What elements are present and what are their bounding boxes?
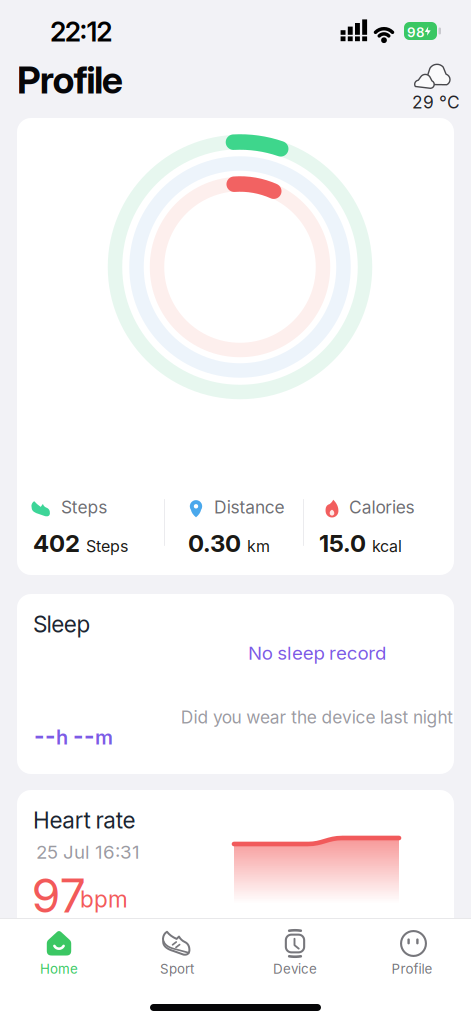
button[interactable]: Profile bbox=[353, 920, 471, 984]
button[interactable]: Heart rate bbox=[17, 790, 454, 980]
staticText: Sleep bbox=[33, 611, 90, 638]
button[interactable]: Home bbox=[0, 920, 118, 984]
button[interactable]: Activity bbox=[17, 118, 454, 575]
staticText: Calories bbox=[349, 497, 415, 517]
staticText: Profile bbox=[17, 58, 123, 102]
staticText: Device bbox=[273, 961, 317, 977]
button[interactable]: Device bbox=[235, 920, 353, 984]
button[interactable]: Sleep bbox=[17, 594, 454, 774]
staticText: Home bbox=[40, 961, 78, 977]
staticText: 22:12 bbox=[50, 16, 112, 47]
staticText: No sleep record bbox=[248, 642, 386, 664]
staticText: 29 °C bbox=[412, 92, 460, 112]
staticText: 97 bbox=[31, 868, 85, 923]
staticText: Steps bbox=[61, 497, 107, 517]
staticText: 15.0 kcal bbox=[319, 529, 402, 557]
staticText: Profile bbox=[391, 961, 432, 977]
staticText: Did you wear the device last night bbox=[181, 707, 453, 727]
staticText: --h --m bbox=[34, 723, 113, 750]
staticText: Heart rate bbox=[33, 807, 135, 834]
staticText: 0.30 km bbox=[188, 529, 270, 557]
staticText: Sport bbox=[160, 961, 194, 977]
staticText: bpm bbox=[80, 886, 128, 913]
button[interactable]: Sport bbox=[118, 920, 236, 984]
staticText: 98 bbox=[407, 24, 425, 40]
button[interactable]: Weather bbox=[408, 58, 462, 112]
staticText: Distance bbox=[214, 497, 285, 517]
staticText: 25 Jul 16:31 bbox=[36, 841, 140, 863]
staticText: 402 Steps bbox=[33, 529, 128, 557]
